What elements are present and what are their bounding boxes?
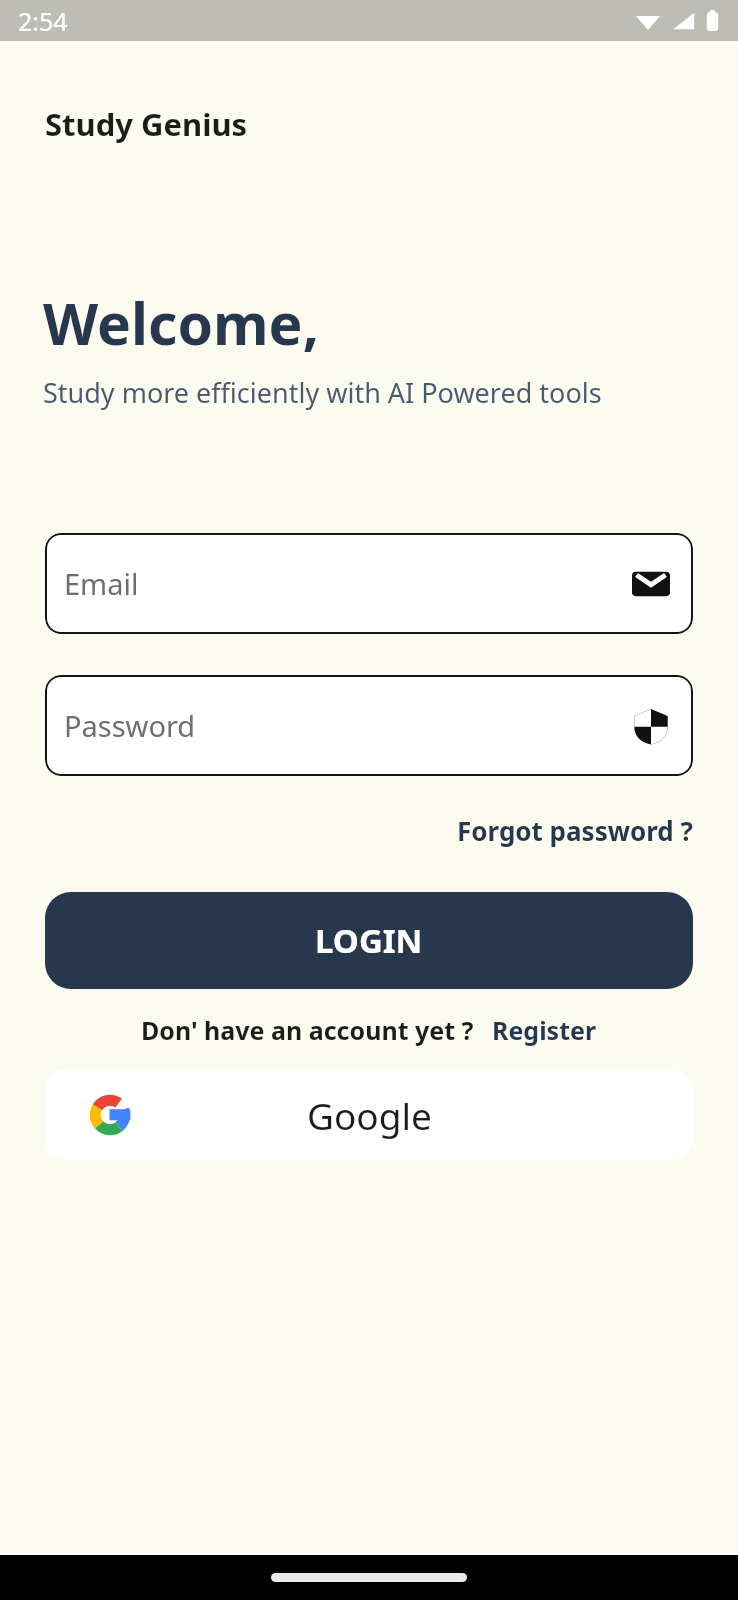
staticText: Register	[492, 1013, 597, 1047]
staticText: Email	[64, 564, 139, 603]
button[interactable]: Email	[45, 533, 693, 634]
button[interactable]: Password	[45, 675, 693, 776]
other: Sign in with Google	[87, 1092, 133, 1138]
button[interactable]: Forgot password ?	[457, 813, 693, 848]
staticText: Study Genius	[45, 103, 248, 145]
button[interactable]: LOGIN	[45, 892, 693, 989]
staticText: Google	[307, 1090, 432, 1140]
button[interactable]: Google	[45, 1069, 693, 1160]
button[interactable]: Register	[492, 1013, 597, 1047]
staticText: 2:54	[18, 4, 68, 38]
staticText: LOGIN	[315, 918, 423, 963]
staticText: Study more efficiently with AI Powered t…	[43, 374, 602, 411]
staticText: Password	[64, 706, 196, 745]
staticText: Welcome,	[43, 284, 319, 362]
other: Password security	[632, 707, 670, 745]
staticText: Don' have an account yet ?	[141, 1013, 474, 1047]
staticText: Forgot password ?	[457, 813, 693, 848]
other: Email	[632, 565, 670, 603]
